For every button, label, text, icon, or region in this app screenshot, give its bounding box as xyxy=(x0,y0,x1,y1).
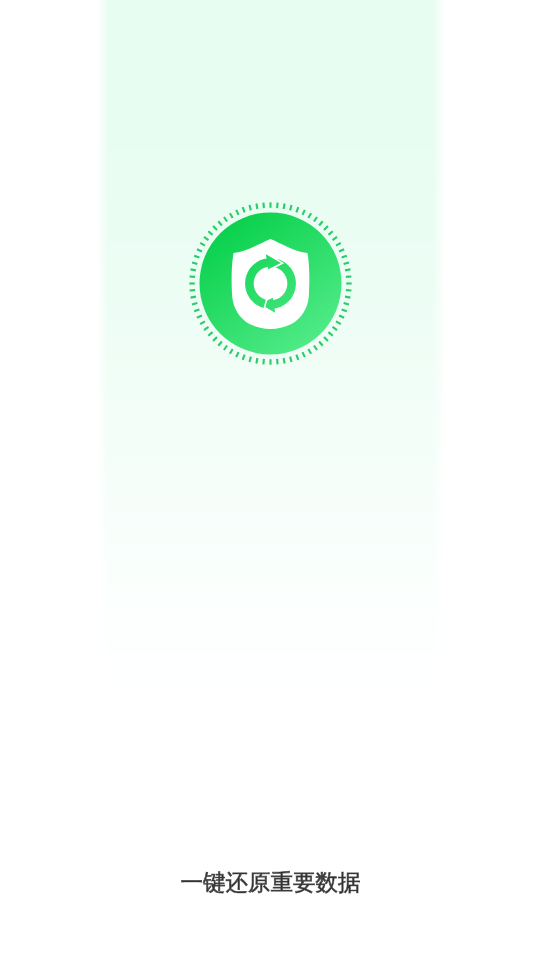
staticText: 一键还原重要数据 xyxy=(0,868,541,896)
staticText: 一键还原重要数据 xyxy=(0,868,541,896)
